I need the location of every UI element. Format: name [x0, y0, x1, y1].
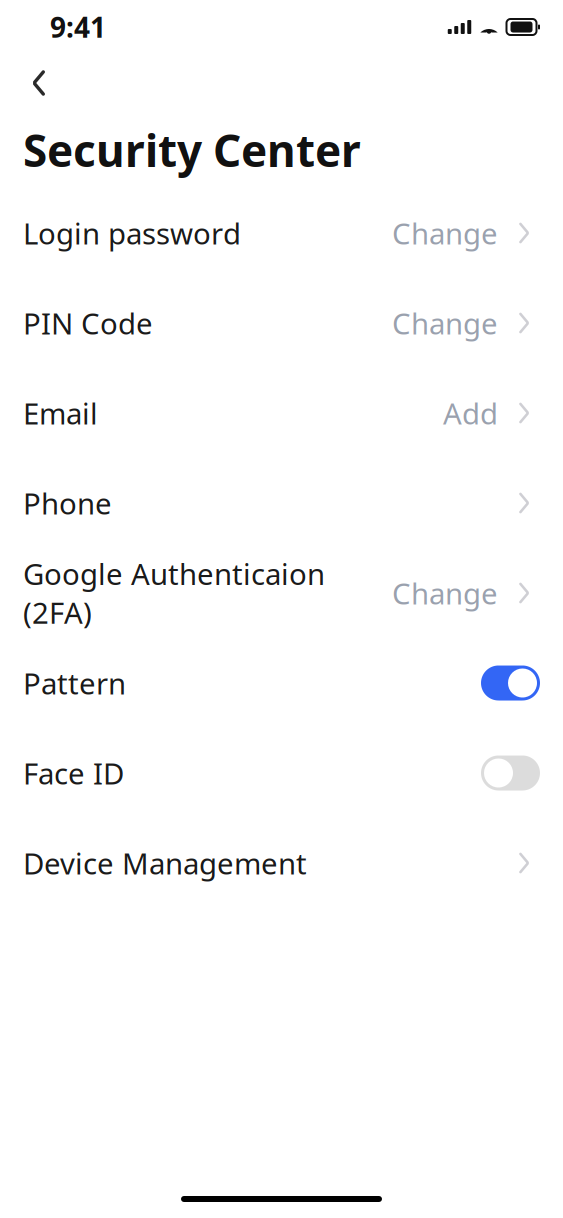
staticText: Change — [392, 573, 498, 612]
staticText: Pattern — [23, 663, 126, 702]
staticText: Device Management — [23, 843, 307, 882]
staticText: Security Center — [23, 121, 361, 179]
staticText: Google Authenticaion (2FA) — [23, 554, 325, 632]
button[interactable]: PIN Code — [0, 278, 563, 368]
staticText: Login password — [23, 213, 241, 252]
staticText: Add — [443, 393, 498, 432]
button[interactable]: Device Management — [0, 818, 563, 908]
staticText: Face ID — [23, 753, 124, 792]
button[interactable]: Phone — [0, 458, 563, 548]
staticText: Change — [392, 303, 498, 342]
staticText: Email — [23, 393, 98, 432]
button[interactable]: Face ID — [0, 728, 563, 818]
button[interactable]: Google Authenticaion (2FA) — [0, 548, 563, 638]
staticText: PIN Code — [23, 303, 153, 342]
button[interactable]: Login password — [0, 188, 563, 278]
button[interactable]: Pattern — [0, 638, 563, 728]
button[interactable]: Back — [16, 60, 62, 106]
button[interactable]: Email — [0, 368, 563, 458]
staticText: Change — [392, 213, 498, 252]
staticText: Phone — [23, 483, 112, 522]
staticText: 9:41 — [50, 8, 106, 46]
